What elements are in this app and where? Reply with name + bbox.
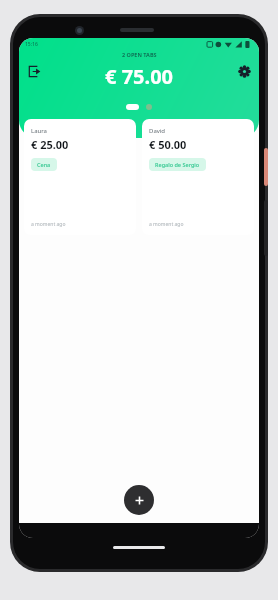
button[interactable]: [126, 104, 139, 110]
button[interactable]: Laura: [24, 119, 136, 235]
button[interactable]: Cena: [31, 158, 57, 171]
button[interactable]: Regalo de Sergio: [149, 158, 206, 171]
staticText: € 25.00: [31, 137, 69, 152]
button[interactable]: Settings: [233, 60, 255, 82]
staticText: David: [149, 127, 166, 135]
button[interactable]: [146, 104, 152, 110]
staticText: € 50.00: [149, 137, 187, 152]
button[interactable]: David: [142, 119, 254, 235]
staticText: 2 OPEN TABS: [122, 51, 157, 58]
staticText: Regalo de Sergio: [155, 161, 200, 168]
staticText: € 75.00: [105, 63, 174, 90]
staticText: a moment ago: [31, 221, 66, 228]
button[interactable]: Add tab: [124, 485, 154, 515]
staticText: Cena: [37, 161, 51, 168]
button[interactable]: Log out: [23, 60, 45, 82]
staticText: Laura: [31, 127, 47, 135]
staticText: 15:16: [25, 41, 38, 48]
staticText: a moment ago: [149, 221, 184, 228]
